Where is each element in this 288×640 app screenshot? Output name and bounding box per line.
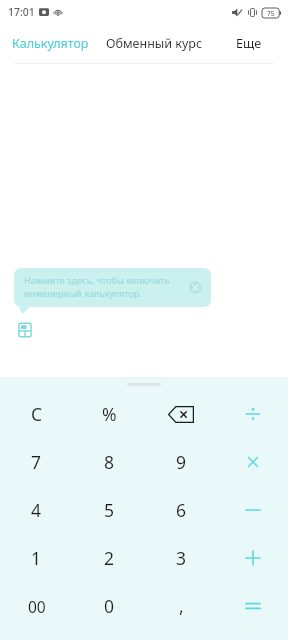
staticText: 3	[176, 546, 187, 570]
staticText: 75	[267, 9, 275, 18]
staticText: 8	[104, 450, 115, 474]
staticText: Обменный курс	[106, 35, 203, 52]
button[interactable]: Нажмите здесь, чтобы включить инженерный…	[14, 268, 211, 307]
staticText: %	[102, 402, 117, 426]
button[interactable]: Еще	[209, 24, 288, 63]
staticText: 4	[31, 498, 42, 522]
button[interactable]: 8	[73, 438, 145, 486]
staticText: 1	[31, 546, 42, 570]
button[interactable]	[217, 486, 288, 534]
button[interactable]: 5	[73, 486, 145, 534]
staticText: 17:01	[8, 5, 35, 19]
staticText: 6	[176, 498, 187, 522]
button[interactable]: Калькулятор	[0, 24, 100, 63]
button[interactable]: %	[73, 390, 145, 438]
staticText: Еще	[236, 35, 262, 52]
button[interactable]: 1	[0, 534, 73, 582]
button[interactable]: C	[0, 390, 73, 438]
button[interactable]	[217, 438, 288, 486]
button[interactable]: 4	[0, 486, 73, 534]
button[interactable]: 00	[0, 582, 73, 630]
staticText: Нажмите здесь, чтобы включить инженерный…	[24, 274, 177, 300]
button[interactable]	[217, 390, 288, 438]
button[interactable]: 7	[0, 438, 73, 486]
staticText: ,	[179, 594, 184, 618]
staticText: 2	[104, 546, 115, 570]
button[interactable]: Удалить	[145, 390, 217, 438]
button[interactable]: Закрыть подсказку	[189, 281, 202, 294]
button[interactable]: ,	[145, 582, 217, 630]
button[interactable]	[217, 582, 288, 630]
staticText: 7	[31, 450, 42, 474]
staticText: C	[31, 402, 43, 426]
staticText: Калькулятор	[12, 35, 89, 52]
button[interactable]	[217, 534, 288, 582]
button[interactable]: 2	[73, 534, 145, 582]
button[interactable]: 0	[73, 582, 145, 630]
staticText: 00	[28, 596, 46, 617]
staticText: 9	[176, 450, 187, 474]
button[interactable]: Инженерный калькулятор	[14, 319, 36, 341]
staticText: 0	[104, 594, 115, 618]
button[interactable]: 6	[145, 486, 217, 534]
button[interactable]: Обменный курс	[100, 24, 209, 63]
staticText: 5	[104, 498, 115, 522]
button[interactable]: 9	[145, 438, 217, 486]
button[interactable]: 3	[145, 534, 217, 582]
